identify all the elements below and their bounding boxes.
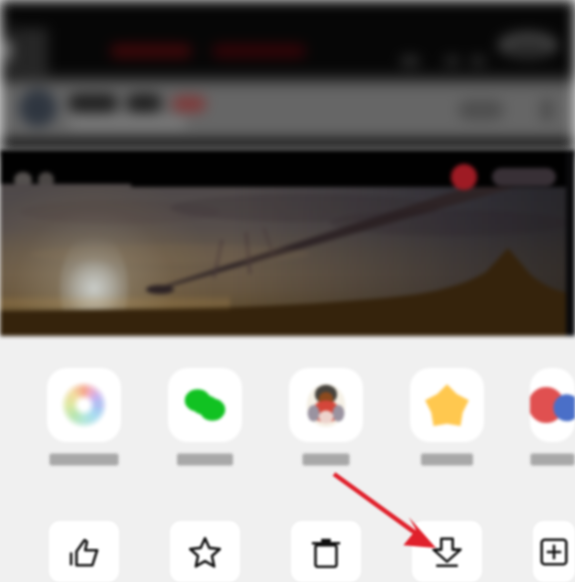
button[interactable]: Favorite (170, 521, 240, 582)
button[interactable]: Delete (291, 521, 361, 582)
button[interactable]: Share target (167, 368, 243, 467)
button[interactable]: Add to list (533, 521, 575, 582)
button[interactable]: Share target (530, 368, 575, 467)
button[interactable]: Share target (409, 368, 485, 467)
button[interactable]: Share target (46, 368, 122, 467)
button[interactable]: Like (49, 521, 119, 582)
button[interactable]: Download (412, 521, 482, 582)
button[interactable]: Share target (288, 368, 364, 467)
